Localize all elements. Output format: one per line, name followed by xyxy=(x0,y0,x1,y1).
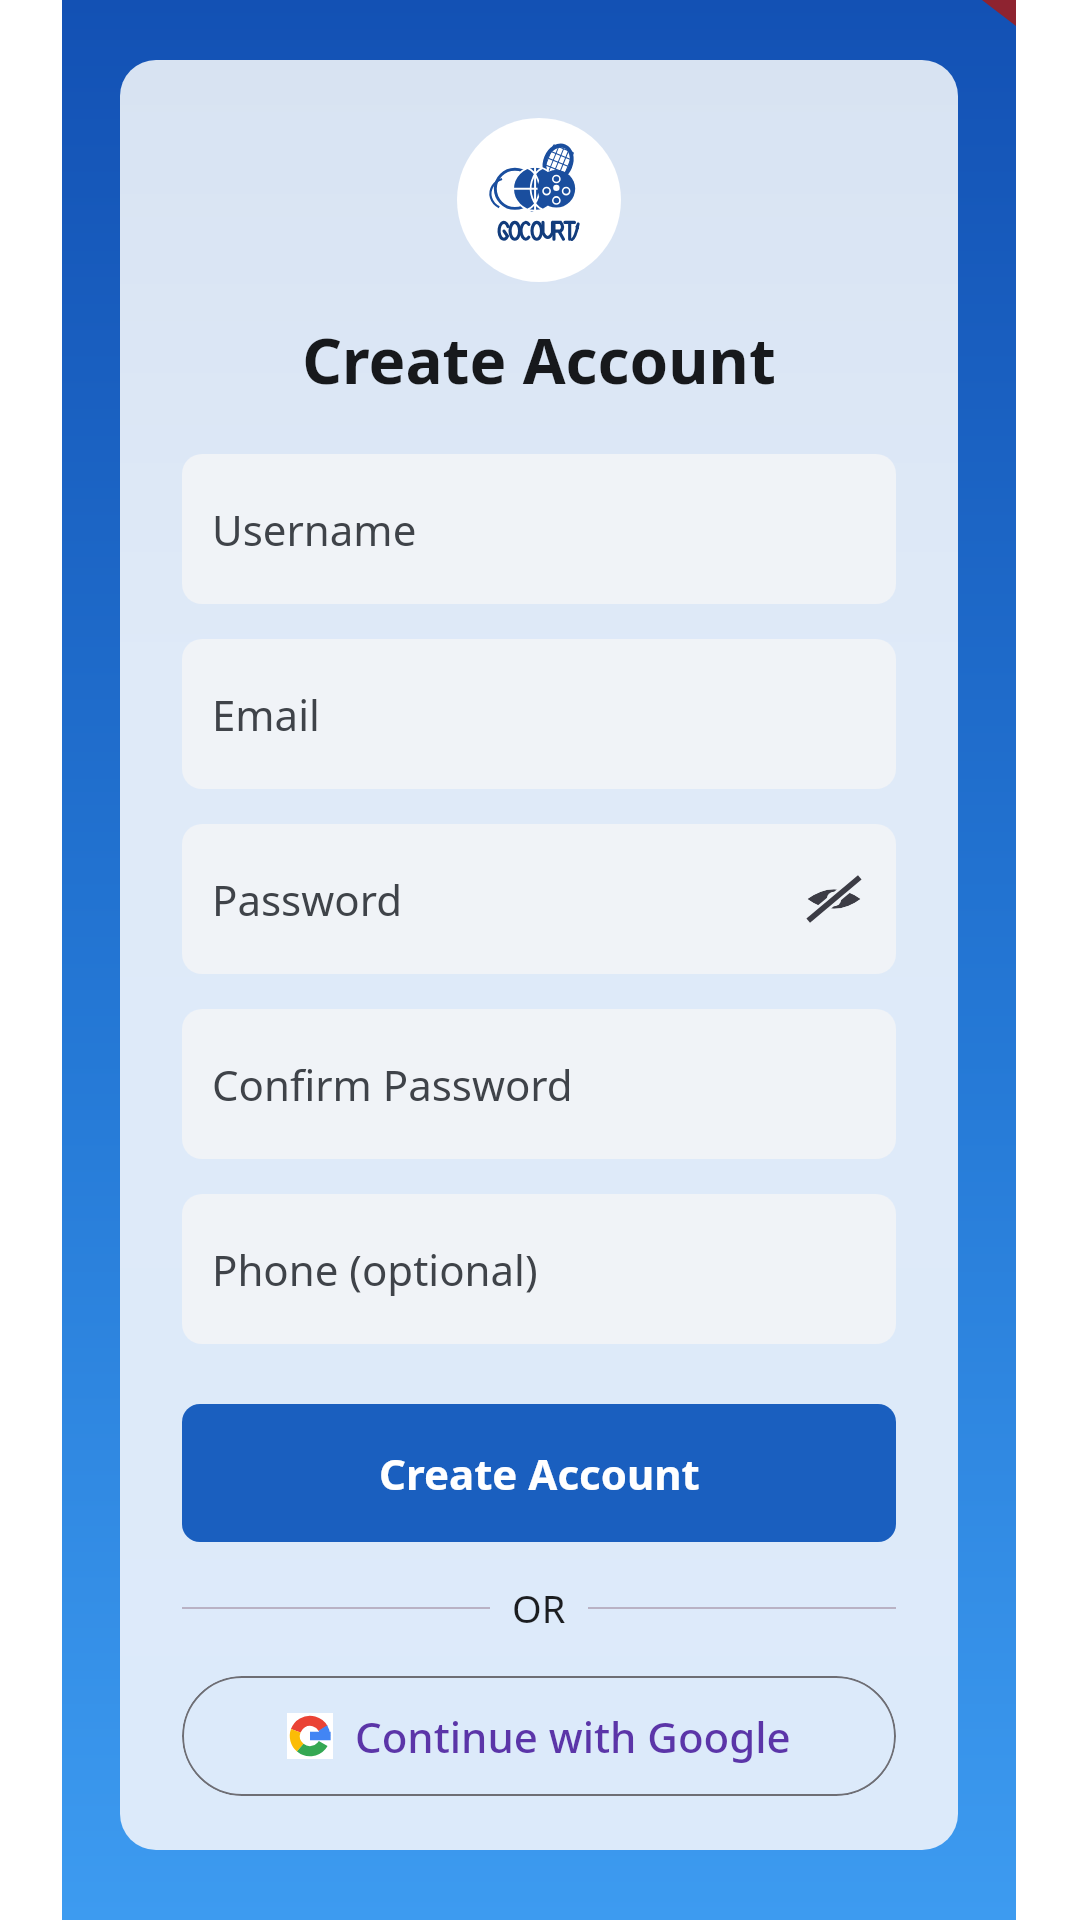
button[interactable]: Email xyxy=(182,639,896,789)
button[interactable]: Toggle password visibility xyxy=(802,867,866,931)
button[interactable]: Create Account xyxy=(182,1404,896,1542)
staticText: Continue with Google xyxy=(355,1708,791,1765)
button[interactable]: Confirm Password xyxy=(182,1009,896,1159)
staticText: Username xyxy=(212,501,417,558)
staticText: Create Account xyxy=(379,1445,700,1502)
staticText: Phone (optional) xyxy=(212,1241,538,1298)
staticText: Create Account xyxy=(302,318,776,402)
staticText: Confirm Password xyxy=(212,1056,573,1113)
button[interactable]: Username xyxy=(182,454,896,604)
button[interactable]: Password xyxy=(182,824,896,974)
button[interactable]: Continue with Google xyxy=(182,1676,896,1796)
button[interactable]: Phone (optional) xyxy=(182,1194,896,1344)
staticText: Email xyxy=(212,686,320,743)
staticText: OR xyxy=(512,1582,566,1634)
staticText: Password xyxy=(212,871,402,928)
